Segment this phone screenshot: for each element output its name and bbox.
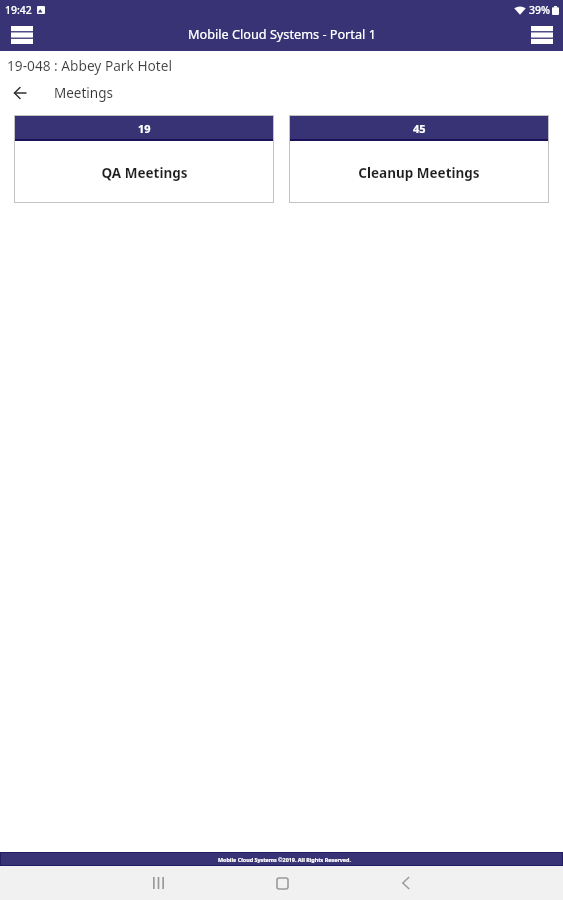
staticText: 19-048 : Abbey Park Hotel bbox=[7, 56, 173, 75]
staticText: QA Meetings bbox=[101, 164, 188, 182]
button[interactable]: 45 bbox=[289, 115, 549, 203]
staticText: Cleanup Meetings bbox=[358, 164, 480, 182]
staticText: Mobile Cloud Systems - Portal 1 bbox=[188, 25, 376, 42]
staticText: 39% bbox=[529, 3, 550, 17]
staticText: Meetings bbox=[54, 84, 113, 102]
staticText: Mobile Cloud Systems ©2019. All Rights R… bbox=[218, 856, 352, 863]
button[interactable]: Back bbox=[0, 81, 40, 105]
button[interactable]: Navigation menu bbox=[8, 22, 36, 48]
button[interactable]: Back bbox=[388, 866, 424, 900]
button[interactable]: Options menu bbox=[528, 22, 556, 48]
button[interactable]: Recent apps bbox=[140, 866, 176, 900]
staticText: 19 bbox=[138, 121, 151, 136]
staticText: 45 bbox=[413, 121, 426, 136]
staticText: 19:42 bbox=[5, 3, 32, 17]
button[interactable]: 19 bbox=[14, 115, 274, 203]
button[interactable]: Home bbox=[264, 866, 300, 900]
